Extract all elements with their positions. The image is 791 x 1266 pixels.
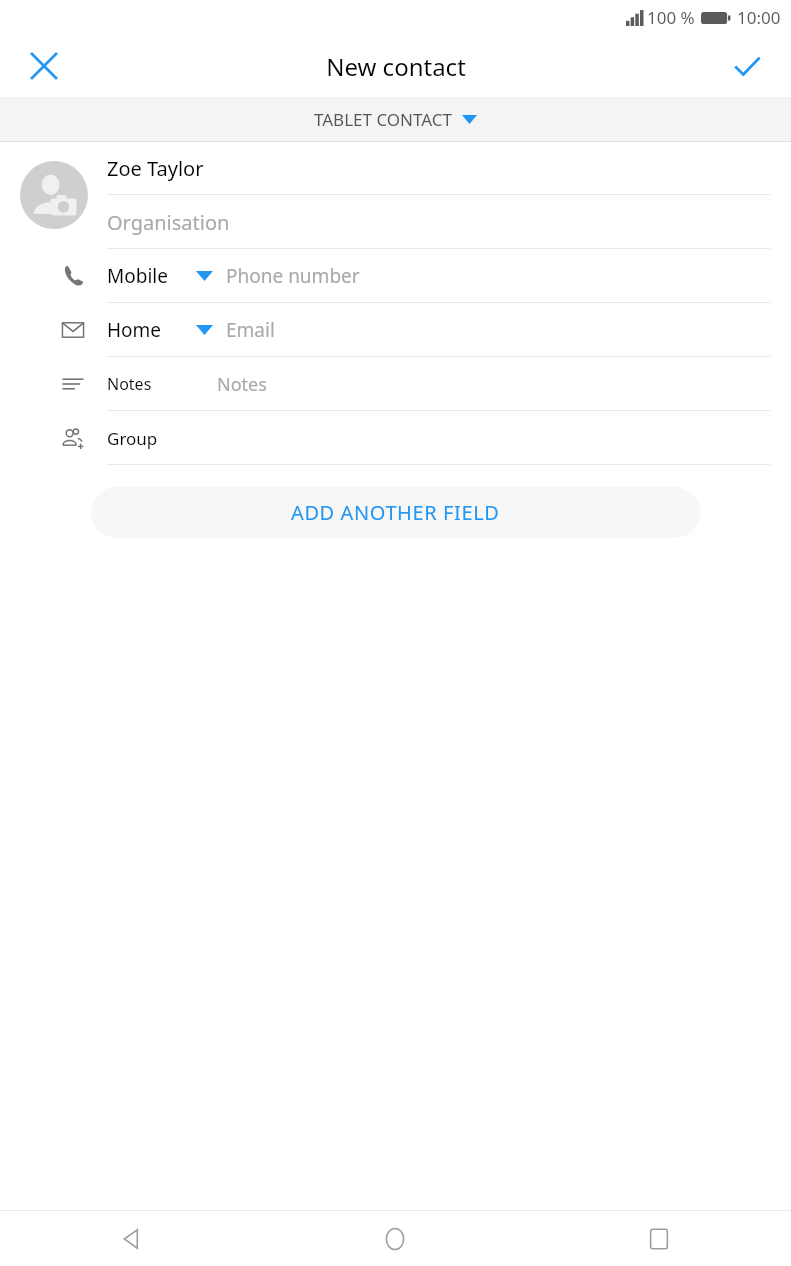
staticText: Notes: [107, 373, 152, 395]
staticText: Notes: [217, 372, 267, 397]
staticText: ADD ANOTHER FIELD: [291, 499, 500, 526]
button[interactable]: Add photo: [20, 161, 88, 229]
button[interactable]: Recents: [527, 1211, 791, 1266]
button[interactable]: Home: [263, 1211, 527, 1266]
button[interactable]: Organisation: [0, 195, 791, 249]
staticText: Zoe Taylor: [107, 155, 204, 182]
button[interactable]: Group: [0, 411, 791, 465]
button[interactable]: Back: [0, 1211, 263, 1266]
staticText: 10:00: [737, 6, 781, 29]
button[interactable]: TABLET CONTACT: [0, 97, 791, 141]
button[interactable]: ADD ANOTHER FIELD: [91, 487, 700, 538]
button[interactable]: Close: [16, 38, 72, 94]
staticText: Phone number: [226, 263, 360, 289]
staticText: TABLET CONTACT: [314, 108, 452, 131]
staticText: 100 %: [647, 6, 695, 29]
button[interactable]: Save: [719, 38, 775, 94]
button[interactable]: Home: [0, 303, 791, 357]
button[interactable]: Notes: [0, 357, 791, 411]
staticText: Organisation: [107, 209, 230, 236]
staticText: Mobile: [107, 263, 168, 289]
staticText: Email: [226, 317, 275, 343]
staticText: New contact: [326, 50, 466, 83]
button[interactable]: Zoe Taylor: [0, 142, 791, 195]
staticText: Group: [107, 427, 158, 450]
button[interactable]: Mobile: [0, 249, 791, 303]
staticText: Home: [107, 317, 162, 343]
